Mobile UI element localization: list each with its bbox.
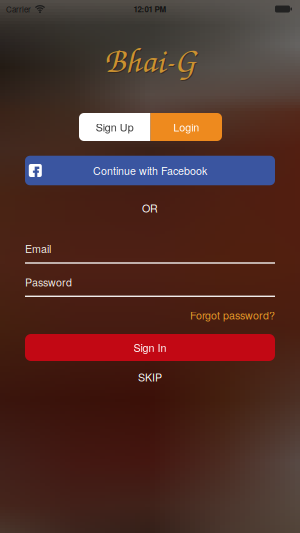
- button[interactable]: Sign In: [25, 334, 275, 361]
- staticText: Sign In: [133, 340, 166, 355]
- staticText: Forgot password?: [190, 308, 275, 322]
- staticText: Bhai-G: [105, 37, 197, 83]
- button[interactable]: Login: [150, 113, 222, 141]
- button[interactable]: Continue with Facebook: [25, 156, 275, 185]
- button[interactable]: Sign Up: [79, 113, 150, 141]
- staticText: SKIP: [138, 370, 162, 384]
- staticText: Bhai-G: [104, 36, 196, 82]
- staticText: Sign Up: [96, 120, 134, 134]
- staticText: OR: [142, 201, 158, 215]
- staticText: Login: [173, 120, 199, 134]
- staticText: Email: [25, 241, 51, 256]
- button[interactable]: Email: [25, 241, 275, 263]
- staticText: Continue with Facebook: [93, 163, 207, 178]
- staticText: Password: [25, 274, 72, 289]
- button[interactable]: Forgot password?: [25, 308, 275, 322]
- button[interactable]: Password: [25, 275, 275, 297]
- button[interactable]: SKIP: [130, 370, 170, 384]
- staticText: Carrier: [6, 3, 31, 15]
- staticText: 12:01 PM: [133, 3, 166, 15]
